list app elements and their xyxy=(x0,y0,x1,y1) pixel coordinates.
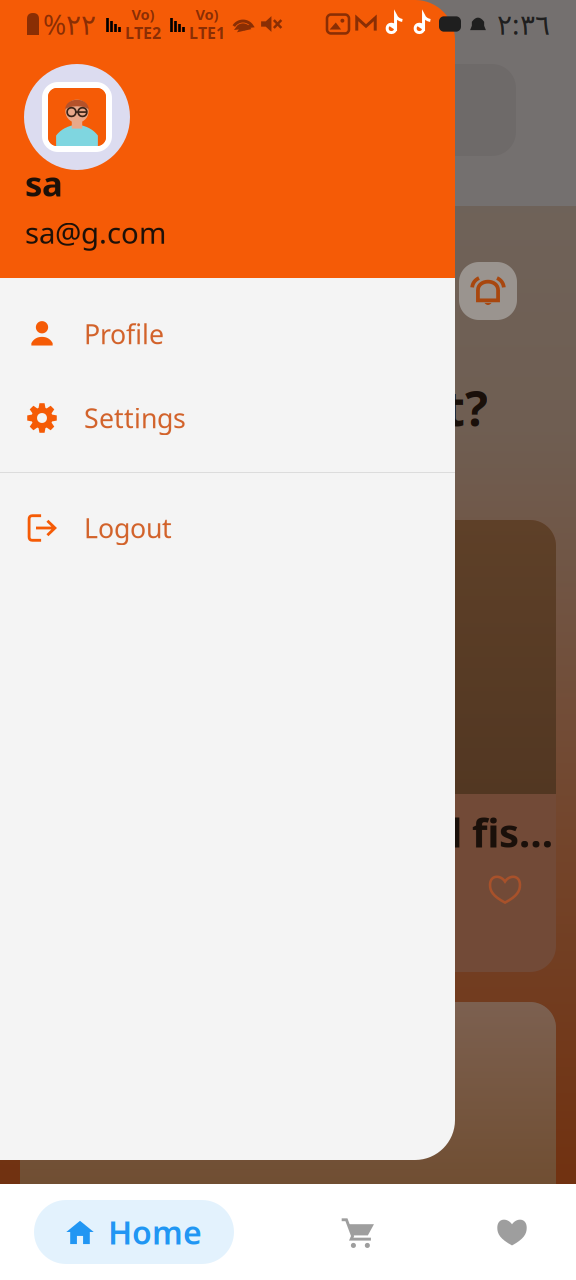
staticText: Vo) xyxy=(131,5,154,24)
button[interactable]: Favorites xyxy=(482,1200,542,1264)
staticText: sa@g.com xyxy=(25,213,166,252)
button[interactable]: Logout xyxy=(0,486,455,570)
staticText: Vo) xyxy=(195,5,218,24)
staticText: Grilled chicken and fish plate xyxy=(80,805,566,858)
button[interactable]: Settings xyxy=(0,376,455,460)
staticText: LTE2 xyxy=(125,22,161,43)
button[interactable]: Home xyxy=(34,1200,234,1264)
staticText: Logout xyxy=(84,510,172,546)
staticText: Profile xyxy=(84,316,164,352)
staticText: sa xyxy=(25,160,63,206)
staticText: What do you want to eat? xyxy=(0,376,488,440)
button[interactable]: Profile xyxy=(0,292,455,376)
staticText: %٢٢ xyxy=(43,5,96,43)
button[interactable]: Cart xyxy=(328,1200,388,1264)
staticText: Settings xyxy=(84,400,186,436)
staticText: LTE1 xyxy=(189,22,225,43)
staticText: Home xyxy=(108,1211,202,1253)
staticText: ٢:٣٦ xyxy=(497,5,550,43)
